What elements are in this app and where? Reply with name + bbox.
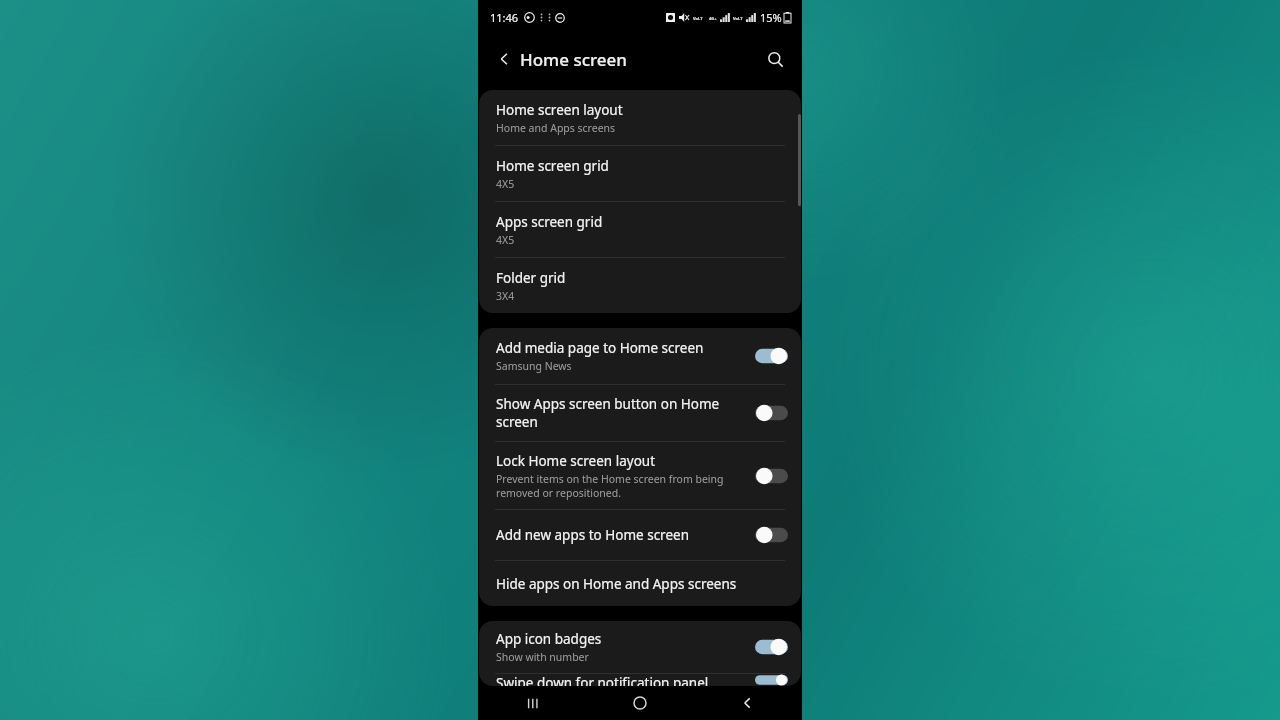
button[interactable]: Show Apps screen button on Home screen [479, 385, 801, 441]
staticText: Home and Apps screens [496, 121, 616, 135]
staticText: Lock Home screen layout [496, 452, 656, 470]
button[interactable]: Recent apps [508, 686, 556, 720]
button[interactable]: Back [724, 686, 772, 720]
staticText: Show with number [496, 650, 589, 664]
staticText: 4X5 [496, 233, 515, 247]
staticText: Hide apps on Home and Apps screens [496, 575, 737, 593]
staticText: 15% [760, 10, 782, 25]
staticText: 3X4 [496, 289, 515, 303]
staticText: 11:46 [490, 10, 519, 25]
button[interactable]: Swipe down for notification panel [479, 674, 801, 686]
button[interactable]: Home screen grid [479, 146, 801, 201]
staticText: Prevent items on the Home screen from be… [496, 472, 743, 500]
staticText: Home screen layout [496, 101, 623, 119]
staticText: 4X5 [496, 177, 515, 191]
staticText: Samsung News [496, 359, 572, 373]
button[interactable]: Hide apps on Home and Apps screens [479, 561, 801, 606]
button[interactable]: Search [761, 45, 789, 73]
button[interactable]: Folder grid [479, 258, 801, 313]
button[interactable]: Home [616, 686, 664, 720]
button[interactable]: App icon badges [479, 621, 801, 673]
button[interactable]: Back [491, 45, 519, 73]
staticText: VoLTE [693, 16, 704, 21]
button[interactable]: Add new apps to Home screen [479, 510, 801, 560]
staticText: Add new apps to Home screen [496, 526, 689, 544]
button[interactable]: Add media page to Home screen [479, 328, 801, 384]
staticText: App icon badges [496, 630, 602, 648]
staticText: Show Apps screen button on Home screen [496, 395, 743, 431]
button[interactable]: Lock Home screen layout [479, 442, 801, 509]
staticText: Home screen [520, 48, 628, 71]
staticText: Home screen grid [496, 157, 609, 175]
button[interactable]: Apps screen grid [479, 202, 801, 257]
staticText: 4G+ [709, 16, 717, 21]
staticText: Swipe down for notification panel [496, 674, 709, 686]
staticText: Add media page to Home screen [496, 339, 704, 357]
staticText: VoLTE [733, 16, 744, 21]
button[interactable]: Home screen layout [479, 90, 801, 145]
staticText: Apps screen grid [496, 213, 603, 231]
staticText: Folder grid [496, 269, 566, 287]
